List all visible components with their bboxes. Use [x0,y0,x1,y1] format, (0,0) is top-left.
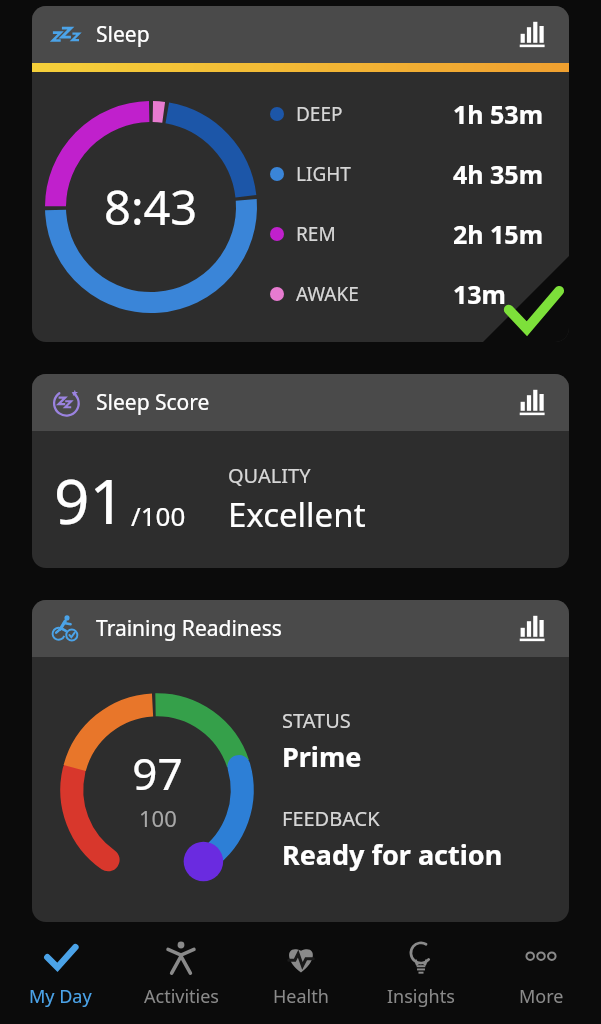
staticText: FEEDBACK [282,805,380,832]
staticText: /100 [131,498,186,533]
staticText: 8:43 [104,175,198,239]
staticText: Insights [387,984,455,1009]
staticText: 100 [139,803,177,833]
button[interactable]: My Day [0,925,121,1024]
staticText: 1h 53m [453,97,544,131]
staticText: AWAKE [296,281,359,307]
staticText: 13m [453,277,506,311]
staticText: Health [273,984,329,1009]
button[interactable]: Health [241,925,361,1024]
button[interactable]: Sleep goal met [483,256,569,342]
button[interactable]: View chart [517,614,547,644]
staticText: Sleep Score [96,388,210,417]
staticText: 97 [132,743,183,803]
staticText: REM [296,221,336,247]
staticText: Activities [144,984,219,1009]
staticText: DEEP [296,101,343,127]
staticText: QUALITY [228,462,311,489]
staticText: More [519,984,564,1009]
button[interactable]: Sleep [32,6,569,63]
button[interactable]: View chart [517,388,547,418]
staticText: STATUS [282,707,351,734]
staticText: 2h 15m [453,217,544,251]
staticText: Sleep [96,20,150,49]
staticText: 91 [54,458,125,542]
staticText: Excellent [228,492,366,537]
staticText: Prime [282,738,362,775]
button[interactable]: Sleep Score [32,374,569,568]
button[interactable]: View chart [517,20,547,50]
button[interactable]: More [481,925,601,1024]
staticText: Training Readiness [96,614,282,643]
staticText: 4h 35m [453,157,544,191]
button[interactable]: Sleep Score [32,374,569,431]
button[interactable]: Sleep [32,6,569,342]
staticText: Ready for action [282,836,503,873]
staticText: My Day [29,984,92,1009]
button[interactable]: Insights [361,925,481,1024]
staticText: LIGHT [296,161,351,187]
button[interactable]: Activities [121,925,241,1024]
button[interactable]: Training Readiness [32,600,569,922]
button[interactable]: Training Readiness [32,600,569,657]
